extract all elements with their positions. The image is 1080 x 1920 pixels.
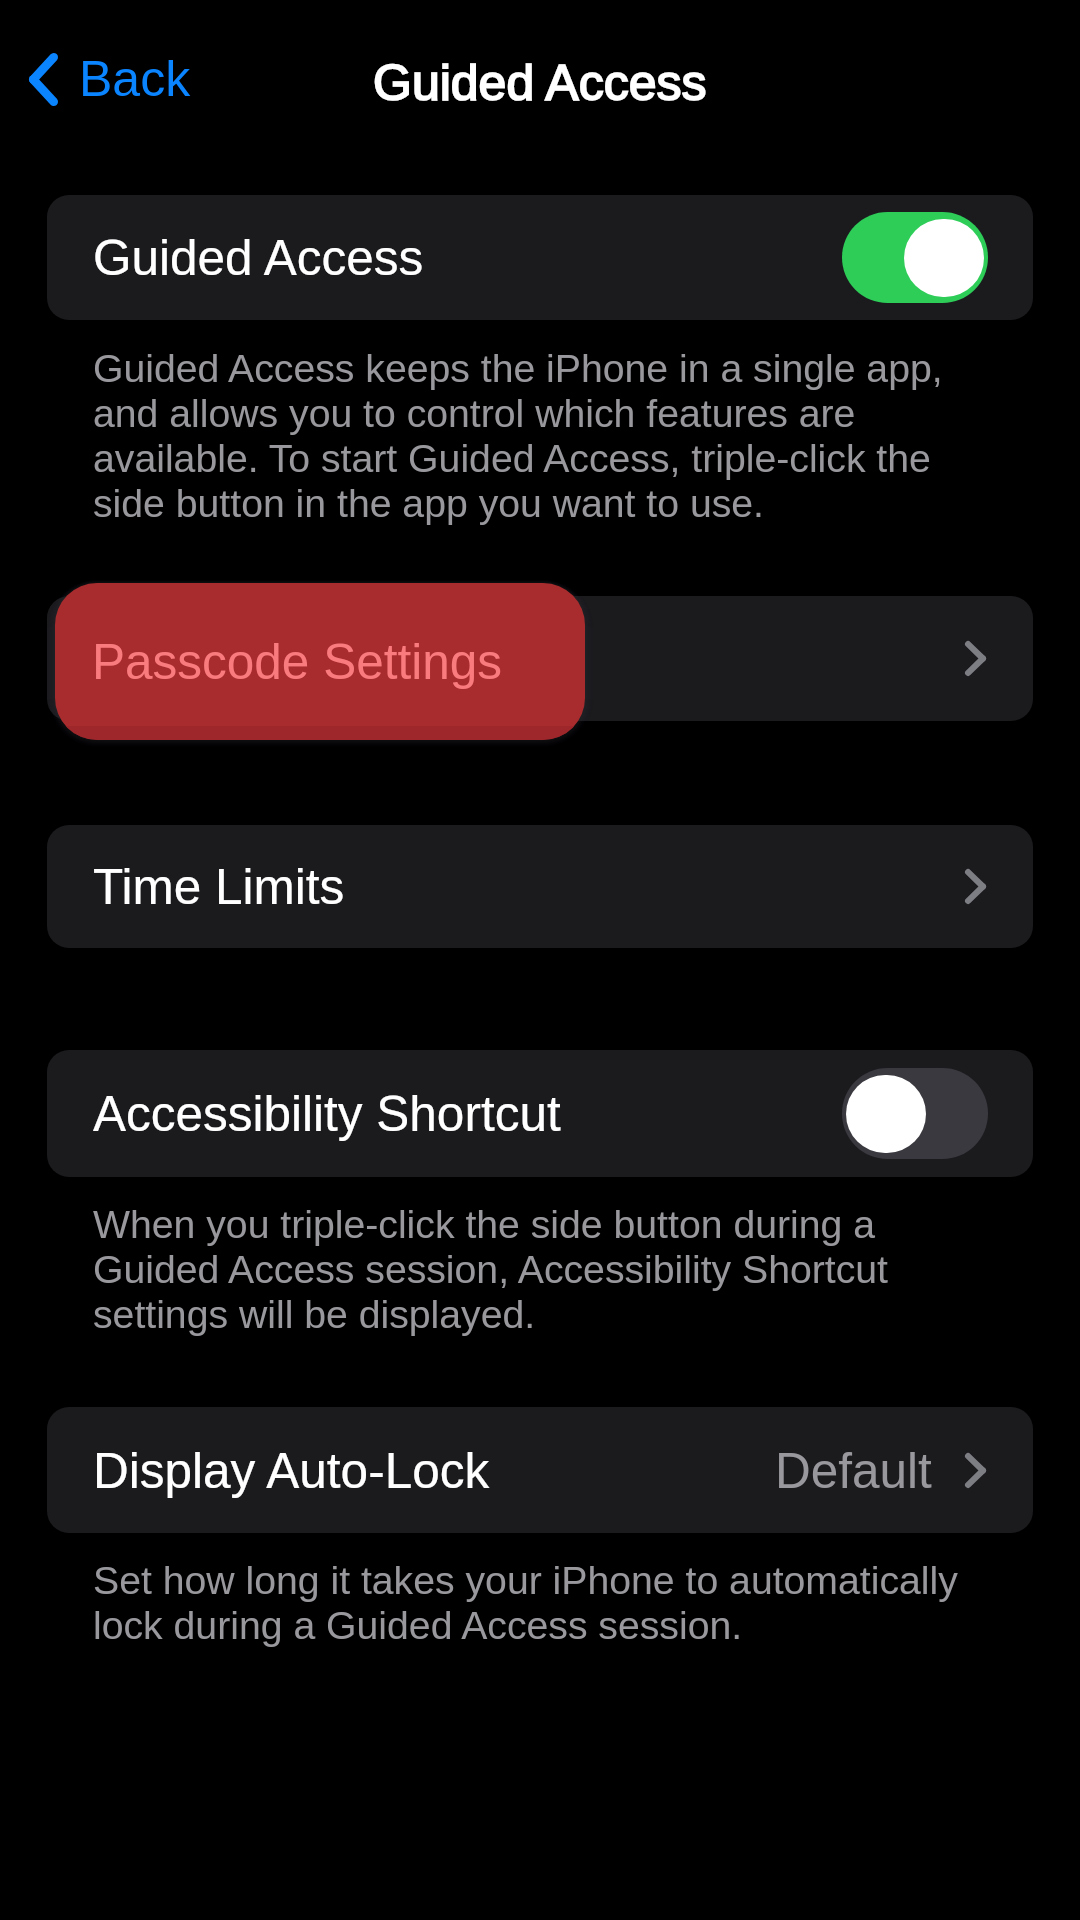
other: Open (965, 869, 986, 904)
staticText: Accessibility Shortcut (93, 1086, 561, 1141)
staticText: Passcode Settings (92, 634, 502, 689)
button[interactable]: Passcode Settings (41, 569, 599, 754)
button[interactable]: Toggle on (842, 212, 988, 303)
button[interactable]: Back (23, 45, 197, 113)
staticText: Back (79, 51, 191, 107)
button[interactable]: Toggle off (842, 1068, 988, 1159)
staticText: Set how long it takes your iPhone to aut… (93, 1559, 977, 1647)
button[interactable]: Time Limits (47, 825, 1033, 948)
button[interactable]: Display Auto-Lock (47, 1407, 1033, 1533)
other: Back (29, 53, 58, 106)
staticText: Default (775, 1443, 932, 1498)
staticText: Guided Access keeps the iPhone in a sing… (93, 347, 977, 525)
staticText: Display Auto-Lock (93, 1443, 490, 1498)
staticText: Guided Access (373, 55, 707, 111)
button[interactable]: Accessibility Shortcut (47, 1050, 1033, 1177)
other: Open (965, 641, 986, 676)
button[interactable]: Open (47, 596, 1033, 721)
staticText: Guided Access (93, 230, 424, 285)
staticText: Time Limits (93, 859, 345, 914)
other: Open (965, 1453, 986, 1488)
button[interactable]: Guided Access (47, 195, 1033, 320)
staticText: When you triple-click the side button du… (93, 1203, 977, 1336)
